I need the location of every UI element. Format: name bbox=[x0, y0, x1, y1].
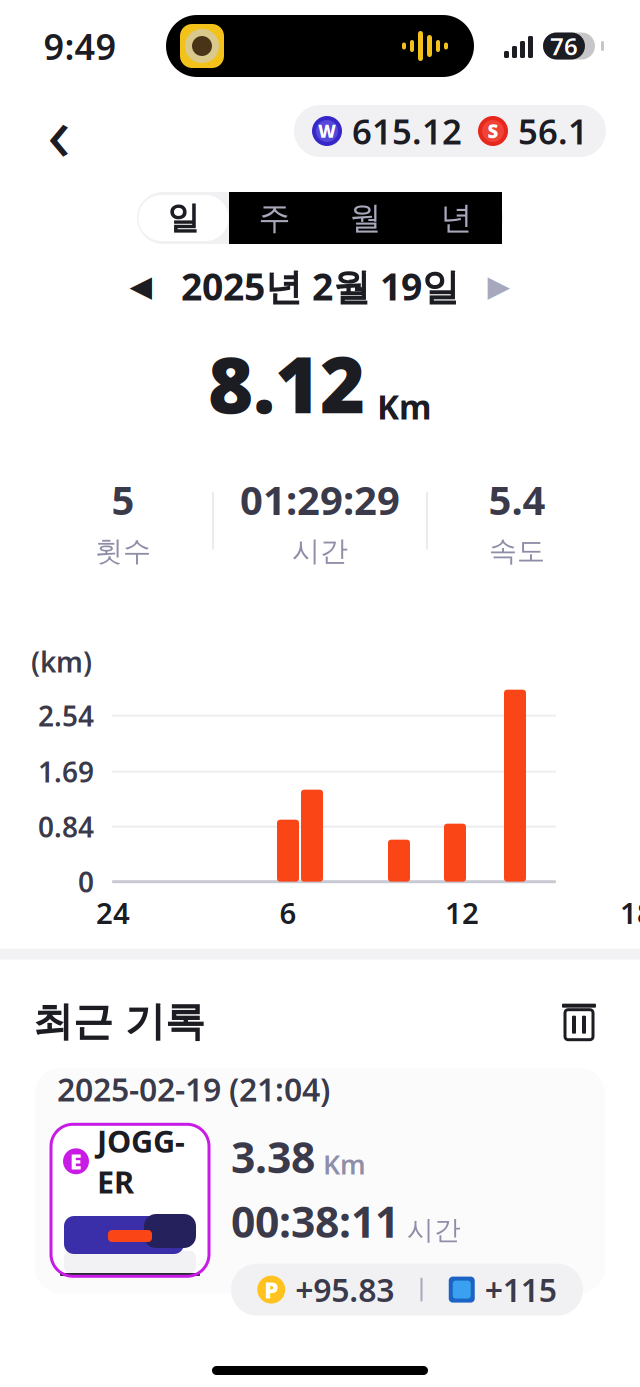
staticText: 0.84 bbox=[38, 808, 94, 845]
staticText: 6 bbox=[279, 893, 296, 932]
staticText: 월 bbox=[349, 198, 381, 238]
button[interactable]: Previous day bbox=[115, 262, 167, 310]
staticText: JOGGER bbox=[97, 1121, 185, 1202]
button[interactable]: 2025-02-19 (21:04) bbox=[35, 1068, 605, 1294]
staticText: 횟수 bbox=[95, 534, 151, 568]
staticText: 12 bbox=[445, 893, 479, 932]
staticText: 5 bbox=[111, 473, 134, 526]
button[interactable]: Back bbox=[28, 100, 90, 162]
staticText: 18 bbox=[620, 893, 640, 932]
staticText: 속도 bbox=[489, 534, 545, 568]
staticText: ▶ bbox=[487, 269, 510, 303]
button[interactable]: Delete records bbox=[551, 994, 607, 1050]
staticText: Km bbox=[323, 1146, 366, 1182]
staticText: S bbox=[487, 119, 498, 143]
staticText: 8.12 bbox=[208, 332, 365, 435]
staticText: ◀ bbox=[129, 269, 152, 303]
button[interactable]: 년 bbox=[411, 192, 502, 244]
button[interactable]: Next day bbox=[473, 262, 525, 310]
button[interactable]: 일 bbox=[138, 192, 229, 244]
staticText: +95.83 bbox=[295, 1268, 394, 1311]
staticText: 최근 기록 bbox=[33, 997, 205, 1046]
staticText: 0 bbox=[78, 863, 94, 900]
button[interactable]: W bbox=[294, 105, 606, 157]
staticText: +115 bbox=[485, 1268, 557, 1311]
staticText: 615.12 bbox=[352, 108, 462, 154]
staticText: 2025-02-19 (21:04) bbox=[57, 1068, 330, 1110]
staticText: 년 bbox=[440, 198, 472, 238]
staticText: 9:49 bbox=[43, 22, 116, 70]
staticText: Km bbox=[377, 384, 432, 429]
staticText: 2.54 bbox=[38, 697, 94, 734]
staticText: 76 bbox=[550, 30, 578, 62]
staticText: 24 bbox=[96, 893, 130, 932]
staticText: P bbox=[264, 1275, 278, 1305]
staticText: (km) bbox=[31, 643, 92, 680]
staticText: 시간 bbox=[292, 534, 348, 568]
staticText: 00:38:11 bbox=[231, 1193, 399, 1250]
button[interactable]: 주 bbox=[229, 192, 320, 244]
staticText: 1.69 bbox=[38, 753, 94, 790]
staticText: 2025년 2월 19일 bbox=[181, 261, 459, 311]
staticText: 일 bbox=[167, 198, 199, 238]
button[interactable]: 월 bbox=[320, 192, 411, 244]
staticText: 시간 bbox=[407, 1214, 461, 1247]
staticText: ‹ bbox=[47, 80, 71, 182]
staticText: W bbox=[318, 119, 336, 142]
staticText: 5.4 bbox=[488, 473, 545, 526]
staticText: 3.38 bbox=[231, 1128, 315, 1185]
staticText: 01:29:29 bbox=[240, 473, 400, 526]
staticText: E bbox=[70, 1147, 82, 1175]
staticText: 56.1 bbox=[518, 108, 588, 154]
staticText: 주 bbox=[258, 198, 290, 238]
